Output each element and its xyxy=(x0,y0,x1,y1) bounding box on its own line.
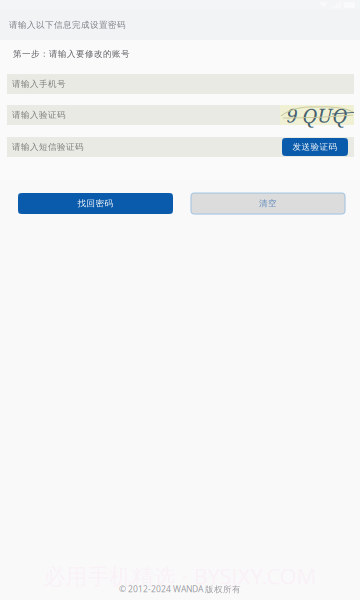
staticText: 请输入短信验证码 xyxy=(12,142,84,152)
staticText: 第一步：请输入要修改的账号 xyxy=(13,49,130,59)
staticText: 必用手机精选 · BYSJXY.COM xyxy=(43,561,316,591)
staticText: © 2012-2024 WANDA 版权所有 xyxy=(119,583,241,595)
button[interactable]: 发送验证码 xyxy=(282,138,348,156)
staticText: 请输入以下信息完成设置密码 xyxy=(9,20,126,30)
staticText: 9 QUQ xyxy=(286,101,347,129)
button[interactable]: 找回密码 xyxy=(18,193,173,214)
staticText: 请输入手机号 xyxy=(12,79,66,89)
staticText: 请输入验证码 xyxy=(12,110,66,120)
staticText: 发送验证码 xyxy=(292,142,337,152)
button[interactable]: 清空 xyxy=(191,193,345,214)
staticText: 找回密码 xyxy=(77,198,113,209)
staticText: 清空 xyxy=(259,198,277,209)
